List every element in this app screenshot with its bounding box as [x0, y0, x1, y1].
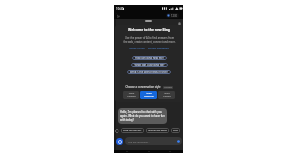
button[interactable]: How do you work? — [146, 128, 169, 133]
staticText: More Creative — [127, 92, 136, 98]
button[interactable]: How can Bing help me? — [132, 56, 167, 60]
button[interactable]: More Balanced — [140, 91, 157, 99]
staticText: Use the power of AI to find answers from… — [123, 36, 176, 44]
staticText: Wha — [173, 129, 178, 132]
button[interactable]: More Precise — [158, 91, 175, 99]
staticText: Choose a conversation style — [125, 85, 161, 89]
staticText: What's the latest news in tech? — [130, 70, 168, 74]
button[interactable]: Bing — [115, 13, 120, 18]
staticText: 1230 — [171, 14, 177, 18]
button[interactable]: What's the latest news in tech? — [127, 70, 171, 74]
button[interactable]: Refresh suggestions — [115, 129, 119, 133]
button[interactable]: Wha — [171, 128, 180, 133]
staticText: How do you work? — [148, 129, 167, 132]
button[interactable]: Bing chat — [116, 138, 123, 145]
staticText: Hello, I'm pleased to chat with you agai… — [120, 110, 165, 122]
staticText: Ask me anything... — [128, 140, 150, 143]
staticText: What can you do? — [123, 129, 142, 132]
staticText: More Balanced — [144, 92, 154, 98]
button[interactable]: Ask me anything... — [125, 137, 182, 145]
button[interactable]: New topic — [177, 21, 181, 25]
button[interactable]: What can you do? — [121, 128, 144, 133]
staticText: More Precise — [163, 92, 171, 98]
button[interactable]: What can I use Bing for? — [131, 63, 168, 67]
staticText: Preview — [164, 86, 172, 89]
button[interactable]: More Creative — [123, 91, 139, 99]
staticText: 10:40 — [116, 7, 124, 11]
staticText: Welcome to the new Bing — [128, 27, 170, 31]
staticText: What can I use Bing for? — [134, 63, 165, 67]
staticText: How can Bing help me? — [135, 56, 164, 60]
button[interactable]: Terms of Use — [129, 46, 145, 49]
button[interactable]: Privacy statement — [148, 46, 169, 49]
button[interactable]: 1230 — [166, 13, 179, 18]
